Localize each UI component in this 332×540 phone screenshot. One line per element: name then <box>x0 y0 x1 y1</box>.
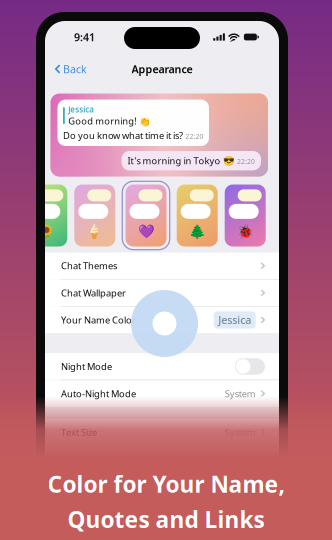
staticText: Quotes and Links <box>67 504 264 534</box>
staticText: Do you know what time it is? <box>63 129 183 141</box>
staticText: Text Size <box>61 426 97 438</box>
staticText: 🍦 <box>86 224 103 239</box>
button[interactable]: 🐞 <box>225 184 266 246</box>
staticText: It's morning in Tokyo 😎 <box>127 154 234 167</box>
button[interactable]: Bold Text <box>45 446 279 472</box>
staticText: Chat Wallpaper <box>61 287 126 299</box>
staticText: 🌻 <box>38 224 55 239</box>
staticText: 9:41 <box>74 30 95 44</box>
button[interactable]: Night Mode <box>45 353 279 380</box>
staticText: System <box>225 426 256 438</box>
staticText: Auto-Night Mode <box>61 387 136 400</box>
button[interactable]: Back <box>45 57 95 81</box>
staticText: 22:20 <box>185 132 203 141</box>
staticText: Jessica <box>68 104 94 115</box>
staticText: Chat Themes <box>61 260 117 272</box>
staticText: Night Mode <box>61 360 112 373</box>
button[interactable]: 🌲 <box>177 184 218 246</box>
staticText: 22:20 <box>237 157 255 166</box>
button[interactable]: 🌻 <box>26 184 67 246</box>
button[interactable]: 🍦 <box>74 184 115 246</box>
button[interactable]: Your Name Color <box>45 307 279 333</box>
staticText: Color for Your Name, <box>47 469 284 499</box>
staticText: Back <box>63 62 87 76</box>
staticText: 💜 <box>137 224 154 239</box>
staticText: 🌲 <box>189 224 206 239</box>
button[interactable]: Auto-Night Mode <box>45 380 279 407</box>
staticText: Jessica <box>218 313 251 327</box>
staticText: Appearance <box>131 62 192 76</box>
button[interactable]: Text Size <box>45 419 279 445</box>
button[interactable]: Chat Themes <box>45 252 279 279</box>
staticText: Your Name Color <box>61 314 136 326</box>
button[interactable]: 💜 <box>122 181 170 250</box>
staticText: Good morning! 👏 <box>68 115 151 127</box>
staticText: 🐞 <box>237 224 254 239</box>
staticText: System <box>225 387 256 400</box>
button[interactable]: Chat Wallpaper <box>45 280 279 306</box>
